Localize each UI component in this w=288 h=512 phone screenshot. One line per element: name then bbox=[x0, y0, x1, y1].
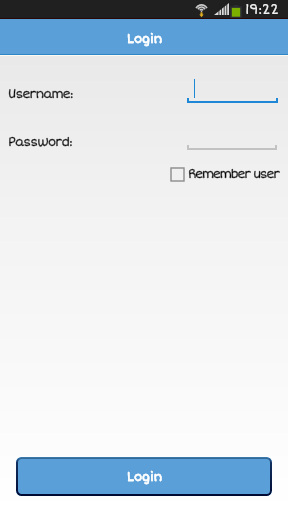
button[interactable]: Username field bbox=[187, 78, 278, 104]
button[interactable]: Remember user bbox=[171, 167, 280, 182]
staticText: Remember user bbox=[188, 167, 280, 182]
staticText: Remember user bbox=[188, 167, 280, 182]
staticText: Password: bbox=[8, 135, 72, 150]
staticText: Username: bbox=[8, 87, 73, 102]
button[interactable]: Login bbox=[16, 457, 272, 496]
staticText: Password: bbox=[8, 135, 72, 150]
staticText: Username: bbox=[8, 87, 73, 102]
staticText: Login bbox=[127, 32, 163, 47]
staticText: Login bbox=[127, 470, 163, 485]
staticText: 19:22 bbox=[245, 1, 279, 18]
button[interactable]: Password field bbox=[187, 125, 277, 151]
staticText: Login bbox=[127, 32, 163, 47]
staticText: Login bbox=[127, 470, 163, 485]
